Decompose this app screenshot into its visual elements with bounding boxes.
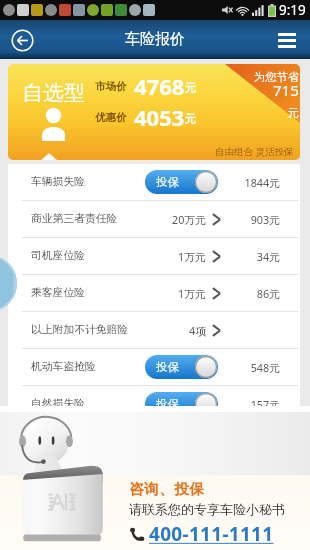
button[interactable]: 司机座位险 (8, 238, 300, 274)
button[interactable]: 车辆损失险 (8, 164, 300, 200)
staticText: 1844元 (238, 175, 280, 190)
button[interactable]: 以上附加不计免赔险 (8, 312, 300, 348)
staticText: 9:19 (279, 1, 306, 19)
staticText: 为您节省 (254, 70, 299, 84)
staticText: 机动车盗抢险 (31, 360, 96, 374)
staticText: 86元 (238, 286, 280, 301)
staticText: 400-111-1111 (149, 521, 274, 547)
staticText: 4053 (134, 102, 185, 132)
staticText: 4项 (189, 323, 206, 338)
button[interactable]: Menu (272, 25, 302, 55)
button[interactable]: 为您节省 (8, 64, 300, 160)
staticText: 投保 (156, 175, 179, 189)
staticText: 投保 (156, 360, 179, 374)
staticText: 34元 (238, 249, 280, 264)
button[interactable]: 自然损失险 (8, 386, 300, 422)
staticText: 元 (287, 106, 299, 120)
staticText: 自选型 (22, 80, 85, 106)
staticText: 自然损失险 (31, 397, 85, 411)
staticText: 元 (185, 112, 196, 126)
button[interactable]: 商业第三者责任险 (8, 201, 300, 237)
staticText: 4768 (134, 71, 185, 101)
staticText: 车辆损失险 (31, 175, 85, 189)
other: Call (129, 526, 146, 543)
button[interactable]: 乘客座位险 (8, 275, 300, 311)
staticText: 1万元 (178, 249, 206, 264)
staticText: 715 (273, 80, 299, 100)
button[interactable]: Back (7, 25, 37, 55)
staticText: 903元 (238, 212, 280, 227)
staticText: 元 (185, 81, 196, 95)
staticText: 548元 (238, 360, 280, 375)
staticText: 商业第三者责任险 (31, 212, 118, 226)
button[interactable]: 投保 (145, 170, 218, 194)
staticText: 投保 (156, 397, 179, 411)
button[interactable]: 机动车盗抢险 (8, 349, 300, 385)
staticText: 乘客座位险 (31, 286, 85, 300)
staticText: 车险报价 (125, 30, 185, 49)
button[interactable]: 投保 (145, 392, 218, 416)
staticText: 司机座位险 (31, 249, 85, 263)
staticText: 1万元 (178, 286, 206, 301)
staticText: 自由组合 灵活投保 (215, 145, 294, 158)
staticText: 优惠价 (95, 111, 127, 124)
button[interactable]: 投保 (145, 355, 218, 379)
staticText: 咨询、投保 (129, 480, 205, 498)
staticText: 市场价 (95, 80, 127, 93)
staticText: 以上附加不计免赔险 (31, 323, 129, 337)
button[interactable]: Expand panel (0, 255, 17, 312)
staticText: 20万元 (172, 212, 206, 227)
staticText: 请联系您的专享车险小秘书 (129, 501, 285, 517)
staticText: 157元 (238, 397, 280, 412)
